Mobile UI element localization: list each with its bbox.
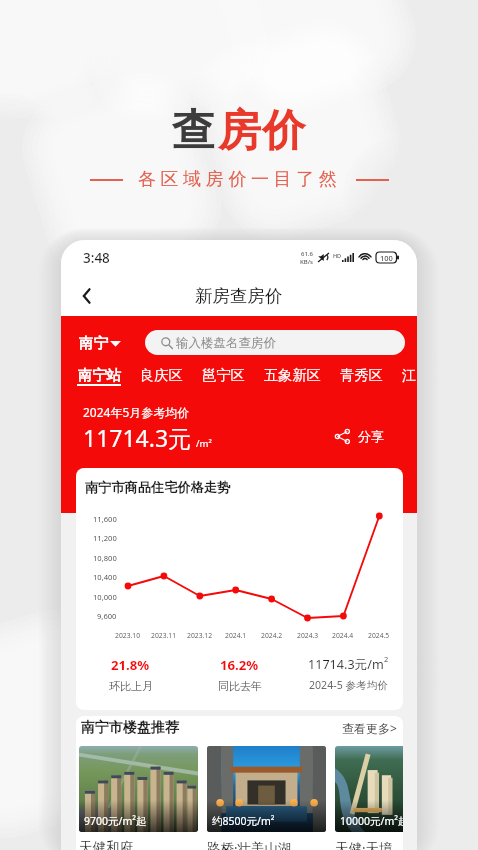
staticText: 青秀区 — [340, 366, 383, 384]
button[interactable]: 约8500元/m² — [207, 746, 326, 850]
staticText: 分享 — [358, 428, 384, 444]
staticText: 邕宁区 — [202, 366, 245, 384]
staticText: 同比去年 — [218, 679, 262, 693]
button[interactable]: 9700元/m²起 — [79, 746, 198, 850]
staticText: HD — [333, 252, 342, 259]
staticText: 16.2% — [220, 656, 259, 674]
button[interactable]: 五象新区 — [264, 366, 321, 384]
staticText: 2024.5 — [368, 631, 390, 640]
staticText: 天健·天境 — [335, 839, 393, 850]
staticText: 2024年5月参考均价 — [83, 404, 190, 420]
button[interactable]: 南宁站 — [77, 366, 121, 384]
button[interactable]: 查看更多 — [342, 720, 397, 736]
staticText: 2 — [384, 654, 389, 664]
button[interactable]: 分享 — [335, 428, 384, 453]
staticText: 10,400 — [93, 572, 117, 582]
staticText: 输入楼盘名查房价 — [176, 335, 276, 351]
staticText: 3:48 — [83, 249, 110, 267]
staticText: 良庆区 — [140, 366, 183, 384]
button[interactable]: 青秀区 — [340, 366, 383, 384]
staticText: > — [390, 720, 397, 736]
staticText: 查看更多 — [342, 721, 390, 736]
staticText: 路桥·壮美山湖 — [207, 839, 292, 850]
staticText: 10000元/m²起 — [340, 814, 403, 828]
staticText: 2024.2 — [261, 631, 283, 640]
staticText: 查 — [172, 104, 217, 158]
staticText: 房价 — [217, 104, 306, 158]
staticText: 2024.1 — [225, 631, 247, 640]
staticText: 江 — [402, 366, 417, 384]
staticText: 11,200 — [93, 533, 117, 543]
staticText: 10,000 — [93, 592, 117, 602]
staticText: 2024.4 — [332, 631, 354, 640]
staticText: 2024-5 参考均价 — [309, 678, 388, 692]
button[interactable]: 输入楼盘名查房价 — [145, 330, 405, 355]
button[interactable]: Back — [71, 280, 103, 312]
button[interactable]: 良庆区 — [140, 366, 183, 384]
staticText: 新房查房价 — [195, 285, 283, 307]
button[interactable]: 邕宁区 — [202, 366, 245, 384]
staticText: 11714.3元/m — [308, 656, 384, 673]
button[interactable]: 11714.3元/m — [294, 656, 403, 692]
staticText: 21.8% — [111, 656, 150, 674]
staticText: 五象新区 — [264, 366, 321, 384]
staticText: 南宁市楼盘推荐 — [81, 719, 179, 737]
staticText: 南宁 — [79, 334, 108, 352]
staticText: 61.6 — [301, 250, 313, 258]
staticText: 9700元/m²起 — [84, 814, 147, 828]
staticText: 11714.3元 — [83, 422, 192, 453]
button[interactable]: 江 — [402, 366, 417, 384]
staticText: 环比上月 — [109, 679, 153, 693]
button[interactable]: 16.2% — [185, 656, 294, 693]
staticText: 南宁市商品住宅价格走势 — [85, 479, 231, 496]
staticText: 南宁站 — [78, 366, 121, 384]
button[interactable]: 21.8% — [76, 656, 185, 693]
staticText: KB/s — [300, 258, 313, 266]
staticText: 约8500元/m² — [212, 814, 275, 828]
staticText: 2024.3 — [297, 631, 319, 640]
staticText: 11,600 — [93, 514, 117, 524]
staticText: 2023.12 — [187, 631, 213, 640]
staticText: 100 — [380, 253, 393, 263]
staticText: 2023.11 — [151, 631, 177, 640]
staticText: 天健和府 — [79, 839, 133, 850]
staticText: 10,800 — [93, 553, 117, 563]
staticText: /m² — [196, 437, 212, 450]
staticText: 2023.10 — [115, 631, 141, 640]
staticText: 9,600 — [97, 611, 117, 621]
staticText: 各区域房价一目了然 — [138, 168, 342, 191]
button[interactable]: 10000元/m²起 — [335, 746, 403, 850]
button[interactable]: 南宁 — [79, 334, 121, 352]
